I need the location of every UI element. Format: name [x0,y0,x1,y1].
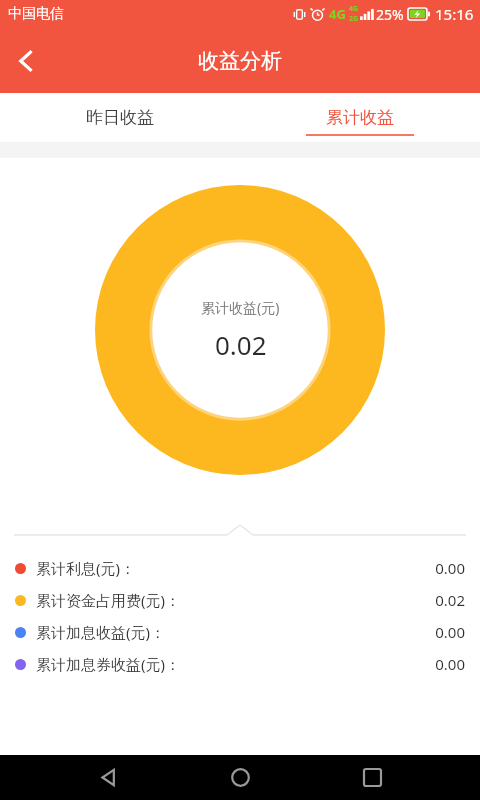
staticText: 累计加息收益(元)： [36,622,166,642]
button[interactable]: 昨日收益 [0,93,240,142]
staticText: 中国电信 [8,5,64,23]
button[interactable]: Back [0,35,52,87]
staticText: 累计加息券收益(元)： [36,654,181,674]
button[interactable]: Home [216,755,264,800]
staticText: 累计利息(元)： [36,558,136,578]
button[interactable]: Recents [348,755,396,800]
staticText: 累计资金占用费(元)： [36,590,181,610]
staticText: 昨日收益 [86,107,154,128]
staticText: 4G [329,5,346,23]
button[interactable]: 累计利息(元)： [0,552,480,584]
button[interactable]: 累计收益 [240,93,480,142]
button[interactable]: 累计加息收益(元)： [0,616,480,648]
staticText: 0.00 [435,622,465,642]
staticText: 0.00 [435,558,465,578]
staticText: 累计收益(元) [201,298,280,317]
staticText: 0.00 [435,654,465,674]
staticText: 0.02 [215,327,267,362]
staticText: 15:16 [435,4,474,24]
button[interactable]: 累计加息券收益(元)： [0,648,480,680]
staticText: 累计收益 [326,107,394,128]
staticText: 0.02 [435,590,465,610]
staticText: 25% [376,5,404,24]
staticText: 2G [349,14,359,24]
button[interactable]: 累计资金占用费(元)： [0,584,480,616]
staticText: 收益分析 [198,48,282,74]
button[interactable]: Back [84,755,132,800]
staticText: 4G [349,4,359,14]
